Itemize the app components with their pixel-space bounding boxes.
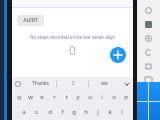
button[interactable]: Add xyxy=(110,47,126,63)
button[interactable]: h xyxy=(80,105,92,118)
button[interactable]: d xyxy=(43,105,56,118)
button[interactable]: j xyxy=(92,105,104,118)
button[interactable]: ALERT xyxy=(17,15,44,26)
staticText: u xyxy=(88,93,92,101)
button[interactable]: f xyxy=(56,105,68,118)
staticText: j xyxy=(97,108,99,116)
staticText: h xyxy=(84,108,88,116)
staticText: r xyxy=(53,93,56,101)
button[interactable]: u xyxy=(84,90,96,103)
staticText: g xyxy=(72,108,76,116)
button[interactable]: Emulator control 6 xyxy=(137,87,160,101)
button[interactable]: k xyxy=(104,105,116,118)
staticText: l xyxy=(121,108,123,116)
button[interactable]: o xyxy=(108,90,120,103)
staticText: q xyxy=(17,93,21,101)
staticText: we xyxy=(101,80,108,87)
button[interactable]: Emulator control 2 xyxy=(137,31,160,45)
staticText: k xyxy=(108,108,112,116)
staticText: I xyxy=(72,80,74,87)
button[interactable]: Emulator control 3 xyxy=(137,45,160,59)
button[interactable]: a xyxy=(17,105,30,118)
staticText: ALERT xyxy=(23,17,38,24)
button[interactable]: Emulator control 5 xyxy=(137,73,160,87)
button[interactable]: t xyxy=(60,90,72,103)
button[interactable]: p xyxy=(120,90,132,103)
button[interactable]: w xyxy=(24,90,36,103)
staticText: p xyxy=(124,93,128,101)
button[interactable]: q xyxy=(13,90,24,103)
staticText: t xyxy=(65,93,68,101)
staticText: d xyxy=(48,108,52,116)
button[interactable]: i xyxy=(96,90,108,103)
button[interactable]: l xyxy=(116,105,128,118)
button[interactable]: r xyxy=(48,90,60,103)
staticText: s xyxy=(35,108,38,116)
button[interactable]: s xyxy=(30,105,43,118)
button[interactable]: y xyxy=(72,90,84,103)
staticText: f xyxy=(61,108,64,116)
staticText: o xyxy=(112,93,116,101)
staticText: e xyxy=(40,93,44,101)
staticText: y xyxy=(76,93,80,101)
button[interactable]: Emulator control 1 xyxy=(137,17,160,31)
staticText: No steps recorded in the last seven days xyxy=(30,34,115,40)
button[interactable]: g xyxy=(68,105,80,118)
staticText: w xyxy=(28,93,33,101)
staticText: a xyxy=(22,108,26,116)
button[interactable]: Expand suggestions xyxy=(120,77,133,90)
button[interactable]: Google xyxy=(12,77,24,90)
staticText: Thanks xyxy=(32,80,49,87)
staticText: i xyxy=(101,93,103,101)
button[interactable]: e xyxy=(36,90,48,103)
staticText: 0 xyxy=(69,42,76,58)
button[interactable]: Emulator control 4 xyxy=(137,59,160,73)
button[interactable]: Emulator control 0 xyxy=(137,3,160,17)
